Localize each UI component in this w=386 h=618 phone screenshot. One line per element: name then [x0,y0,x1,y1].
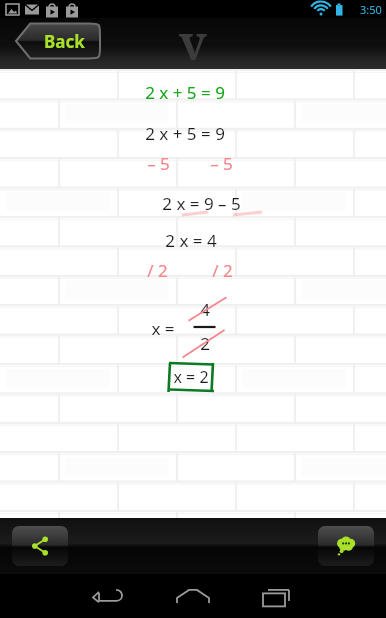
staticText: 2 x = 9 – 5 [162,192,241,215]
staticText: 3:50 [360,2,382,17]
staticText: 2 x = 4 [165,229,217,252]
staticText: 2 x + 5 = 9 [145,122,225,145]
staticText: – 5 [147,152,170,175]
staticText: 4 [200,298,210,321]
staticText: Back [44,30,85,53]
staticText: 2 [200,332,210,355]
staticText: 2 x + 5 = 9 [145,81,225,104]
staticText: x = 2 [173,366,209,388]
button[interactable]: Comments [318,526,374,566]
staticText: – 5 [210,152,233,175]
button[interactable]: Back [16,22,100,60]
staticText: / 2 [147,259,168,282]
staticText: x = [151,317,175,340]
button[interactable]: Share [12,526,68,566]
staticText: / 2 [212,259,233,282]
staticText: y [179,8,207,60]
